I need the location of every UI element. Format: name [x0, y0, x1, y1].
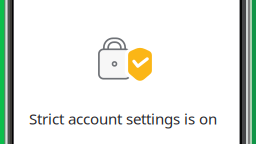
staticText: Strict account settings is on [29, 108, 217, 129]
